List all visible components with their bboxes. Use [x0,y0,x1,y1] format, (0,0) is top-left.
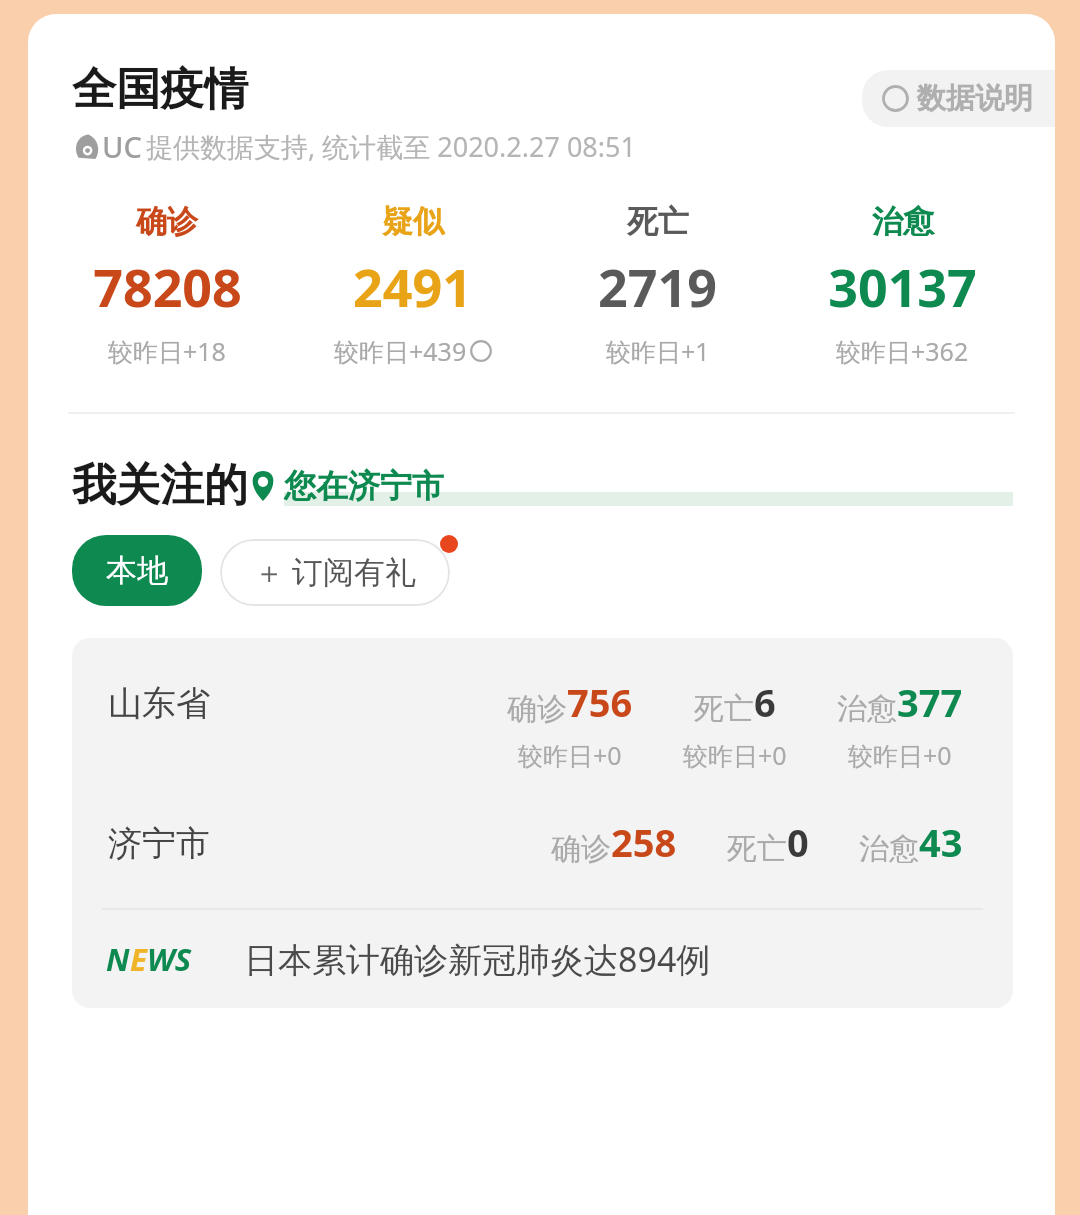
staticText: 确诊 [507,690,567,728]
staticText: 较昨日+18 [108,334,226,368]
staticText: 山东省 [108,682,210,725]
staticText: 较昨日+362 [836,334,969,368]
button[interactable]: 确诊 [44,202,290,368]
staticText: 43 [919,816,963,868]
staticText: 日本累计确诊新冠肺炎达894例 [244,936,711,982]
staticText: 死亡 [727,830,787,868]
button[interactable]: 数据说明 [862,70,1055,127]
staticText: 您在济宁市 [284,466,444,506]
staticText: 死亡 [694,690,754,728]
staticText: 0 [787,816,809,868]
button[interactable]: N [72,910,1013,1008]
staticText: N [106,938,130,980]
staticText: 较昨日+0 [683,738,787,772]
button[interactable]: 山东省 [72,676,1013,772]
button[interactable]: 济宁市 [72,816,1013,868]
staticText: 756 [567,676,633,728]
staticText: 本地 [106,551,168,590]
staticText: UC [102,127,142,166]
staticText: 377 [897,676,963,728]
staticText: 2491 [353,251,472,322]
button[interactable]: 疑似 [290,202,535,368]
staticText: 数据说明 [917,80,1033,117]
staticText: 订阅有礼 [292,553,416,592]
staticText: 治愈 [859,830,919,868]
staticText: WS [147,938,192,980]
staticText: 较昨日+1 [606,334,710,368]
staticText: 较昨日+0 [848,738,952,772]
staticText: 济宁市 [108,822,210,865]
staticText: 全国疫情 [72,62,248,117]
staticText: 78208 [93,251,242,322]
staticText: 258 [611,816,677,868]
staticText: 2719 [598,251,717,322]
staticText: 疑似 [382,202,444,241]
button[interactable]: 本地 [72,535,202,606]
button[interactable]: 治愈 [780,202,1025,368]
staticText: 确诊 [136,202,198,241]
staticText: E [130,938,147,980]
staticText: 提供数据支持, 统计截至 2020.2.27 08:51 [146,128,636,165]
staticText: ＋ [254,554,284,592]
staticText: 治愈 [837,690,897,728]
button[interactable]: ＋ [220,539,450,606]
staticText: 治愈 [872,202,934,241]
staticText: 较昨日+439 [334,334,467,368]
button[interactable]: 您在济宁市 [248,466,1013,506]
staticText: 6 [754,676,776,728]
staticText: 我关注的 [72,458,248,513]
button[interactable]: 死亡 [535,202,780,368]
staticText: 死亡 [627,202,689,241]
staticText: 确诊 [551,830,611,868]
staticText: 30137 [828,251,977,322]
staticText: 较昨日+0 [518,738,622,772]
